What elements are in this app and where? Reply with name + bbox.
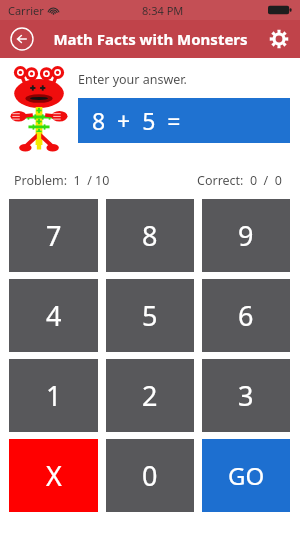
staticText: GO (228, 459, 265, 492)
staticText: 8:34 PM (142, 3, 184, 18)
staticText: X (46, 457, 62, 494)
button[interactable]: Back (10, 27, 34, 51)
button[interactable]: 1 (9, 359, 98, 432)
staticText: 1 (46, 377, 62, 414)
staticText: 8 + 5 = (92, 105, 181, 136)
staticText: 8 (142, 217, 158, 254)
button[interactable]: 8 (106, 199, 194, 272)
staticText: Correct: 0 / 0 (197, 172, 282, 189)
staticText: 0 (142, 457, 158, 494)
button[interactable]: 6 (202, 279, 290, 352)
staticText: 6 (238, 297, 254, 334)
staticText: 7 (46, 217, 62, 254)
staticText: Problem: 1 / 10 (14, 172, 110, 189)
button[interactable]: 7 (9, 199, 98, 272)
staticText: 3 (238, 377, 254, 414)
button[interactable]: 4 (9, 279, 98, 352)
button[interactable]: 8 + 5 = (78, 98, 290, 143)
staticText: 4 (46, 297, 62, 334)
staticText: 9 (238, 217, 254, 254)
button[interactable]: 9 (202, 199, 290, 272)
button[interactable]: X (9, 439, 98, 512)
staticText: Math Facts with Monsters (53, 29, 248, 49)
staticText: Enter your answer. (78, 71, 187, 88)
button[interactable]: 0 (106, 439, 194, 512)
staticText: 2 (142, 377, 158, 414)
button[interactable]: GO (202, 439, 290, 512)
staticText: Carrier (8, 3, 44, 18)
button[interactable]: 2 (106, 359, 194, 432)
button[interactable]: 5 (106, 279, 194, 352)
staticText: 5 (142, 297, 158, 334)
button[interactable]: 3 (202, 359, 290, 432)
button[interactable]: Settings (266, 26, 292, 52)
